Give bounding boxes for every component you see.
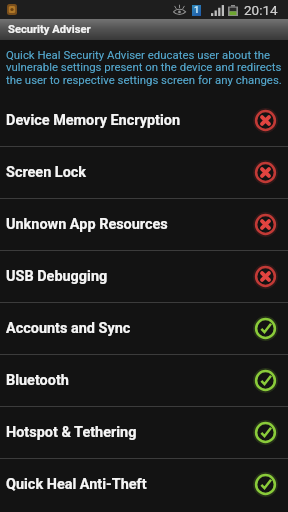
staticText: Screen Lock — [6, 164, 254, 181]
staticText: 1 — [194, 5, 200, 16]
button[interactable]: Hotspot & Tethering — [0, 407, 288, 458]
staticText: Unknown App Resources — [6, 216, 254, 233]
staticText: Accounts and Sync — [6, 320, 254, 337]
staticText: Hotspot & Tethering — [6, 424, 254, 441]
staticText: Quick Heal Anti-Theft — [6, 476, 254, 493]
other: Secure — [254, 317, 277, 340]
button[interactable]: Screen Lock — [0, 147, 288, 198]
staticText: Device Memory Encryption — [6, 112, 254, 129]
other: At risk — [254, 161, 277, 184]
staticText: Quick Heal Security Adviser educates use… — [6, 48, 285, 87]
button[interactable]: Unknown App Resources — [0, 199, 288, 250]
button[interactable]: Device Memory Encryption — [0, 95, 288, 146]
button[interactable]: Security Adviser — [0, 19, 288, 40]
button[interactable]: USB Debugging — [0, 251, 288, 302]
other: At risk — [254, 213, 277, 236]
other: At risk — [254, 109, 277, 132]
button[interactable]: Accounts and Sync — [0, 303, 288, 354]
staticText: Security Adviser — [8, 23, 91, 36]
button[interactable]: Bluetooth — [0, 355, 288, 406]
other: Secure — [254, 369, 277, 392]
staticText: USB Debugging — [6, 268, 254, 285]
other: At risk — [254, 265, 277, 288]
staticText: 20:14 — [244, 2, 278, 18]
other: Secure — [254, 421, 277, 444]
button[interactable]: Quick Heal Anti-Theft — [0, 459, 288, 510]
other: Secure — [254, 473, 277, 496]
staticText: Bluetooth — [6, 372, 254, 389]
